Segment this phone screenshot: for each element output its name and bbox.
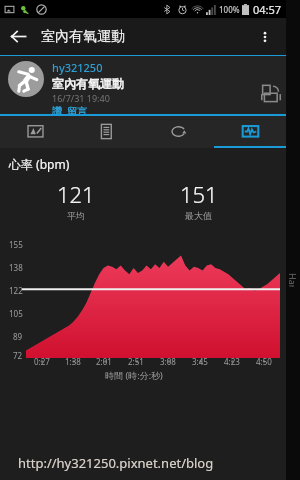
button[interactable]: 留言: [67, 105, 87, 114]
staticText: http://hy321250.pixnet.net/blog: [18, 454, 214, 472]
button[interactable]: More options: [246, 18, 283, 55]
staticText: 155: [9, 239, 23, 250]
staticText: 16/7/31 19:40: [52, 92, 110, 104]
staticText: 3:08: [160, 356, 176, 367]
button[interactable]: 讚: [52, 105, 62, 114]
staticText: Hardaway's Galaxy Note Edge: [287, 273, 299, 287]
staticText: 04:57: [253, 2, 282, 17]
button[interactable]: Share: [258, 82, 284, 108]
staticText: 讚: [52, 105, 62, 114]
staticText: 4:50: [256, 356, 272, 367]
button[interactable]: Back: [0, 18, 37, 55]
staticText: 時間 (時:分:秒): [0, 369, 268, 381]
button[interactable]: Laps: [142, 116, 214, 146]
staticText: 心率 (bpm): [9, 156, 70, 172]
staticText: 3:45: [192, 356, 208, 367]
staticText: 72: [13, 350, 23, 361]
staticText: 0:27: [34, 356, 50, 367]
staticText: 最大值: [185, 210, 212, 221]
staticText: 平均: [67, 210, 85, 221]
staticText: 室內有氧運動: [52, 76, 124, 91]
staticText: 留言: [67, 105, 87, 114]
staticText: 138: [9, 262, 23, 273]
staticText: 122: [9, 285, 23, 296]
staticText: 100%: [219, 4, 240, 15]
staticText: 2:51: [128, 356, 144, 367]
staticText: 121: [57, 179, 95, 209]
staticText: 1:38: [65, 356, 81, 367]
button[interactable]: Details: [71, 116, 142, 146]
button[interactable]: Heart rate: [214, 116, 286, 146]
button[interactable]: hy321250: [0, 56, 286, 114]
staticText: 89: [13, 331, 23, 342]
button[interactable]: Map: [0, 116, 71, 146]
staticText: 105: [9, 308, 23, 319]
staticText: 2:01: [96, 356, 112, 367]
staticText: 4:23: [224, 356, 240, 367]
staticText: hy321250: [52, 60, 103, 75]
staticText: 室內有氧運動: [41, 28, 125, 46]
staticText: 151: [180, 179, 218, 209]
